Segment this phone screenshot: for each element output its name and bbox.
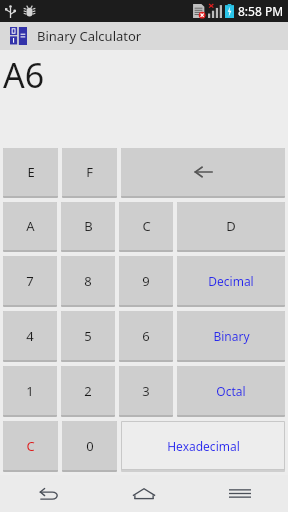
button[interactable]: 3 [119,366,173,415]
staticText: D [226,217,236,235]
button[interactable]: 9 [119,256,173,305]
button[interactable]: 6 [119,311,173,360]
staticText: Decimal [208,273,254,289]
button[interactable]: A [3,202,57,250]
staticText: B [84,217,93,235]
button[interactable]: 8 [61,256,115,305]
staticText: C [26,437,35,455]
button[interactable]: C [119,202,173,250]
staticText: C [142,217,151,235]
staticText: 5 [84,327,92,345]
staticText: 3 [142,382,150,400]
staticText: F [86,163,93,181]
staticText: 1 [26,382,34,400]
button[interactable]: 1 [3,366,57,415]
button[interactable]: F [62,148,117,196]
staticText: Octal [216,383,246,399]
staticText: 0 [86,437,94,455]
button[interactable]: Backspace [121,148,285,196]
button[interactable]: Recent apps [192,475,288,512]
button[interactable]: 7 [3,256,57,305]
button[interactable]: C [3,421,58,470]
button[interactable]: B [61,202,115,250]
staticText: 7 [26,272,34,290]
staticText: Binary Calculator [37,27,142,45]
staticText: E [27,163,35,181]
staticText: Binary [213,328,250,344]
button[interactable]: 0 [62,421,117,470]
staticText: 9 [142,272,150,290]
button[interactable]: E [3,148,58,196]
staticText: 6 [142,327,150,345]
button[interactable]: Hexadecimal [121,421,285,470]
button[interactable]: 2 [61,366,115,415]
button[interactable]: Binary [177,311,285,360]
staticText: 8:58 PM [238,3,284,19]
button[interactable]: Home [96,475,192,512]
staticText: 8 [84,272,92,290]
staticText: A [26,217,35,235]
staticText: Hexadecimal [167,438,240,454]
button[interactable]: 5 [61,311,115,360]
button[interactable]: 4 [3,311,57,360]
button[interactable]: Back [0,475,96,512]
staticText: 2 [84,382,92,400]
button[interactable]: D [177,202,285,250]
staticText: 4 [26,327,34,345]
button[interactable]: Decimal [177,256,285,305]
button[interactable]: Octal [177,366,285,415]
staticText: A6 [3,52,45,98]
